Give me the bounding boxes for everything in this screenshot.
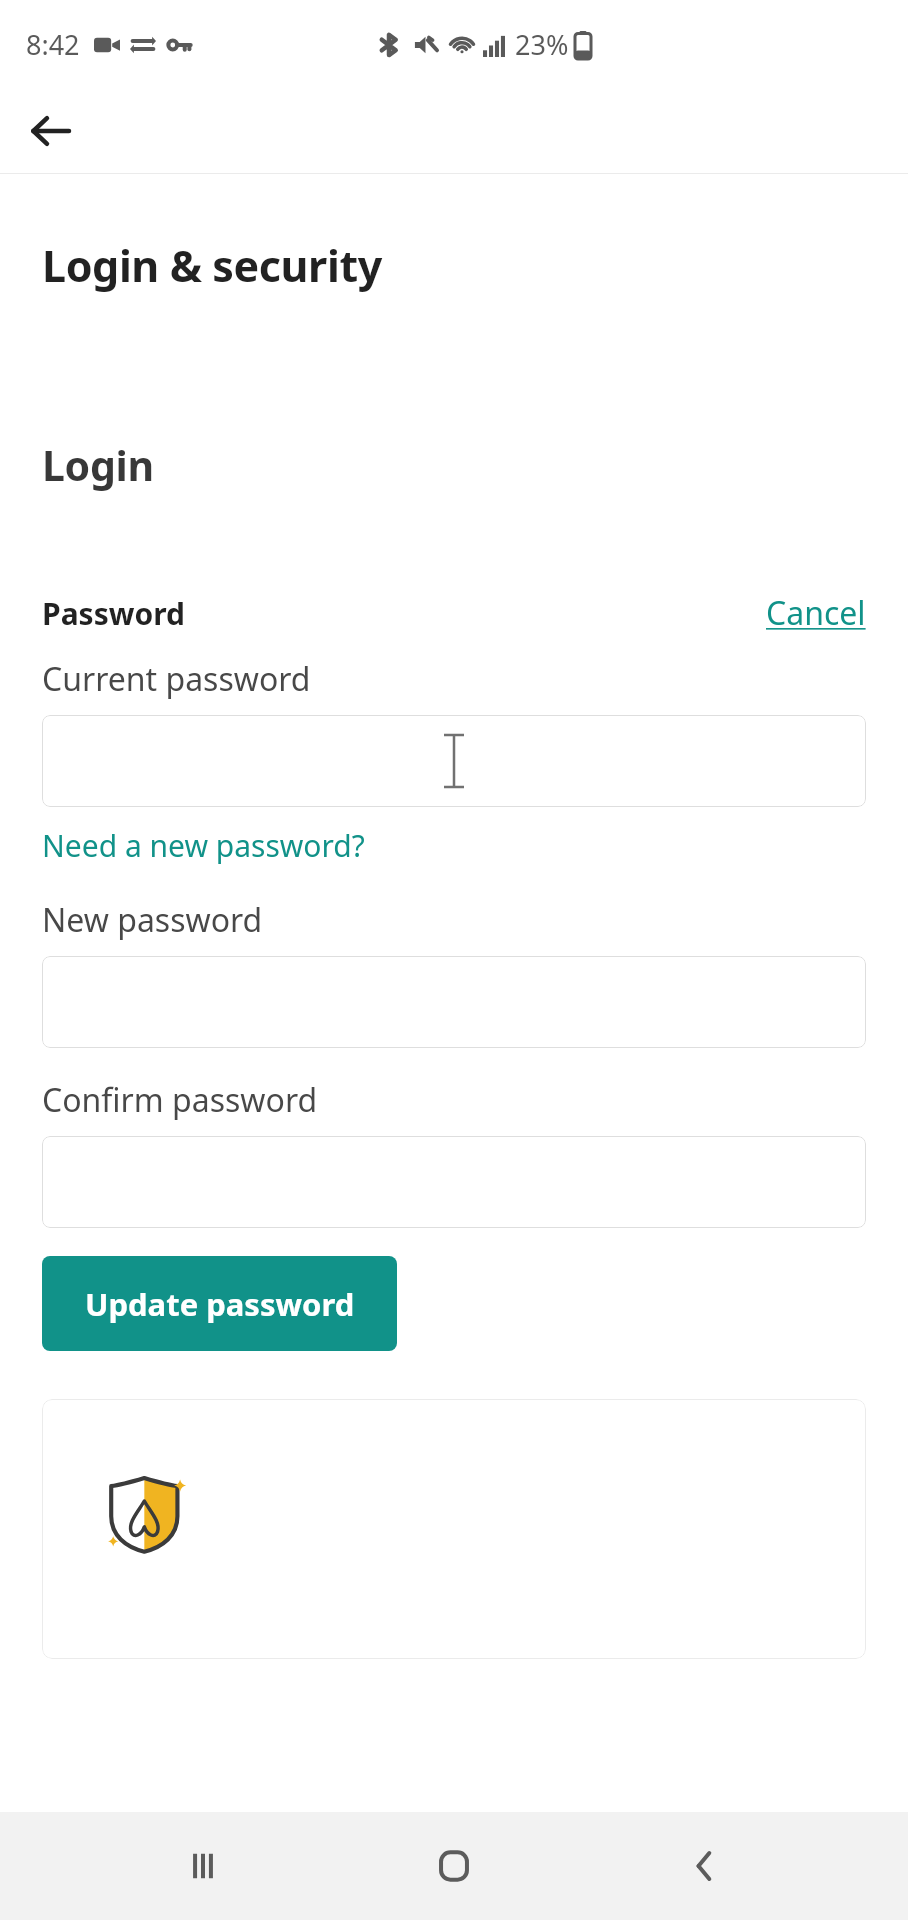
button[interactable]: Recents [155,1818,251,1914]
staticText: Current password [42,657,311,701]
staticText: Cancel [766,591,866,635]
button[interactable]: Back [18,98,84,164]
staticText: Update password [85,1283,355,1325]
button[interactable]: Need a new password? [42,825,365,866]
button[interactable] [42,715,866,807]
staticText: Login & security [42,236,382,295]
button[interactable] [42,1399,866,1659]
button[interactable] [42,956,866,1048]
staticText: Confirm password [42,1078,318,1122]
button[interactable]: Cancel [766,591,866,635]
button[interactable]: Home [406,1818,502,1914]
staticText: 8:42 [26,26,80,63]
button[interactable] [42,1136,866,1228]
staticText: New password [42,898,263,942]
staticText: Need a new password? [42,825,365,866]
button[interactable]: Update password [42,1256,397,1351]
button[interactable]: Back [657,1818,753,1914]
staticText: 23% [515,26,569,63]
staticText: Login [42,437,154,493]
staticText: Password [42,593,185,634]
